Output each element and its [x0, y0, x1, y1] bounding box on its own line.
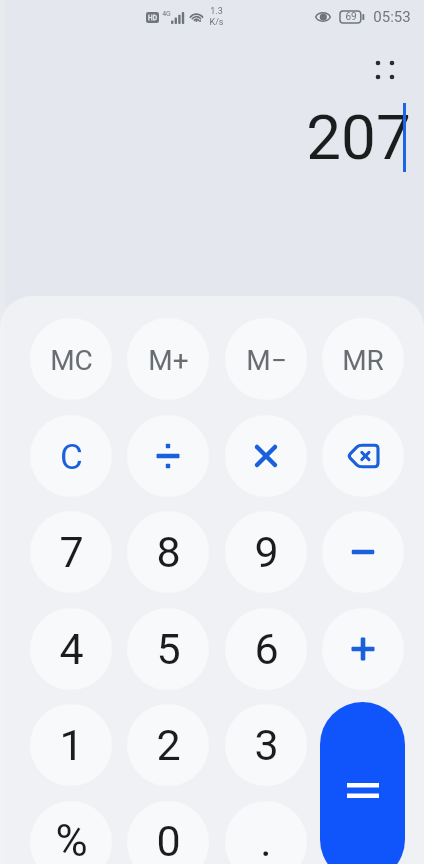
staticText: 0: [156, 816, 181, 864]
staticText: 1: [59, 720, 84, 770]
staticText: 2: [156, 720, 181, 770]
button[interactable]: 6: [225, 608, 307, 690]
button[interactable]: Minus: [322, 511, 404, 593]
staticText: HD: [148, 14, 157, 22]
staticText: 5: [156, 624, 181, 674]
staticText: 05:53: [373, 8, 411, 26]
button[interactable]: 4: [30, 608, 112, 690]
button[interactable]: MR: [322, 318, 404, 400]
staticText: 207: [306, 101, 411, 174]
button[interactable]: 7: [30, 511, 112, 593]
staticText: 7: [59, 527, 84, 577]
button[interactable]: M+: [127, 318, 209, 400]
staticText: 4: [59, 624, 84, 674]
button[interactable]: 9: [225, 511, 307, 593]
button[interactable]: 2: [127, 704, 209, 786]
button[interactable]: 0: [127, 801, 209, 864]
button[interactable]: 1: [30, 704, 112, 786]
staticText: MR: [342, 344, 384, 377]
button[interactable]: 3: [225, 704, 307, 786]
button[interactable]: .: [225, 801, 307, 864]
button[interactable]: M−: [225, 318, 307, 400]
staticText: 3: [254, 720, 279, 770]
button[interactable]: MC: [30, 318, 112, 400]
button[interactable]: 8: [127, 511, 209, 593]
staticText: 9: [254, 527, 279, 577]
staticText: .: [260, 816, 272, 864]
button[interactable]: History: [363, 48, 407, 92]
staticText: 4G: [162, 10, 171, 18]
staticText: K/s: [209, 17, 224, 28]
staticText: M−: [246, 344, 287, 377]
button[interactable]: Multiply: [225, 415, 307, 497]
button[interactable]: Equals: [320, 702, 405, 864]
button[interactable]: %: [30, 801, 112, 864]
staticText: 8: [156, 527, 181, 577]
staticText: 1.3: [210, 6, 223, 17]
button[interactable]: C: [30, 415, 112, 497]
button[interactable]: Plus: [322, 608, 404, 690]
staticText: MC: [50, 344, 93, 377]
staticText: M+: [148, 344, 189, 377]
staticText: 69: [345, 11, 357, 23]
button[interactable]: Backspace: [322, 415, 404, 497]
staticText: 6: [254, 624, 279, 674]
staticText: C: [60, 437, 83, 478]
staticText: %: [55, 815, 88, 864]
button[interactable]: Divide: [127, 415, 209, 497]
button[interactable]: 5: [127, 608, 209, 690]
